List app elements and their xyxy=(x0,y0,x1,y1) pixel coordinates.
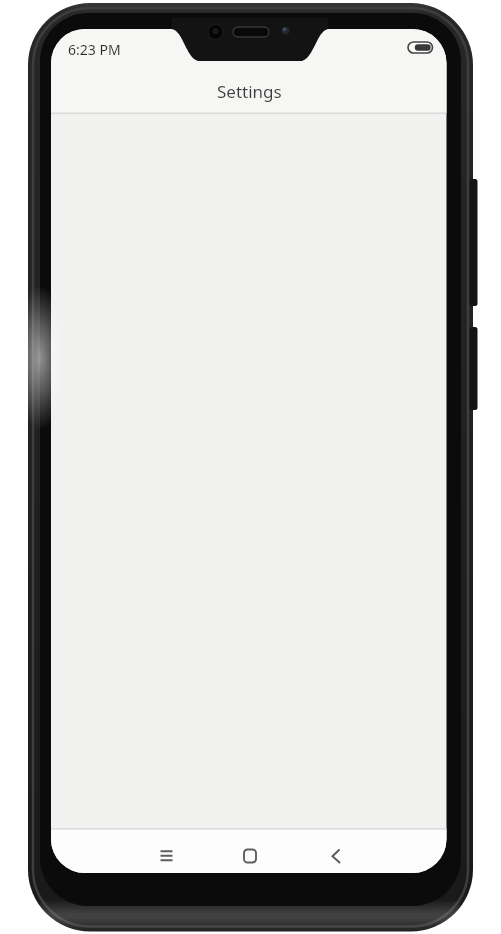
staticText: 6:23 PM xyxy=(68,40,121,59)
button[interactable] xyxy=(218,831,283,873)
button[interactable] xyxy=(303,831,368,873)
staticText: Settings xyxy=(217,80,282,103)
button[interactable] xyxy=(134,831,199,873)
